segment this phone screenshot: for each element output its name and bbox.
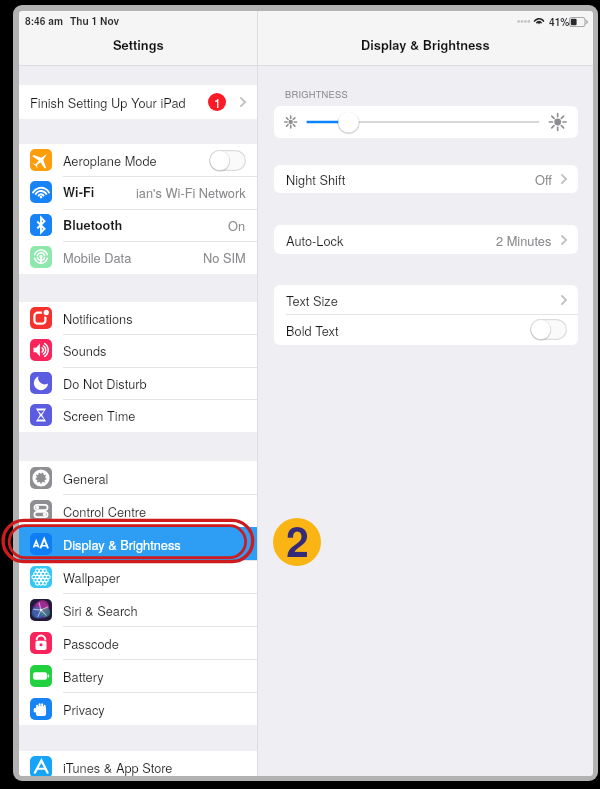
staticText: Auto-Lock [286,231,344,249]
staticText: 1 [214,94,221,111]
staticText: Settings [113,35,164,53]
staticText: Siri & Search [63,601,138,619]
staticText: Passcode [63,634,119,652]
staticText: Off [535,170,552,188]
staticText: Text Size [286,291,338,309]
button[interactable]: Display & Brightness [19,527,258,560]
button[interactable]: Brightness [274,106,578,138]
staticText: Wallpaper [63,568,121,586]
staticText: Wi-Fi [63,183,95,201]
other: Open [561,235,567,245]
button[interactable]: Night Shift [274,165,578,193]
button[interactable]: Toggle off [530,319,567,340]
staticText: BRIGHTNESS [285,87,348,100]
staticText: Bluetooth [63,216,123,234]
button[interactable]: Passcode [19,626,258,659]
button[interactable]: Control Centre [19,494,258,527]
button[interactable]: Bold Text [274,315,578,344]
staticText: 8:46 am [25,14,63,29]
button[interactable]: Notifications [19,302,258,334]
button[interactable]: Screen Time [19,399,258,431]
button[interactable]: Wallpaper [19,560,258,593]
staticText: 2 [286,518,309,559]
staticText: Do Not Disturb [63,374,147,392]
other: Open [561,174,567,184]
staticText: Display & Brightness [63,535,181,553]
button[interactable]: Siri & Search [19,593,258,626]
staticText: Battery [63,667,104,685]
staticText: Bold Text [286,321,339,339]
other: Wi-Fi [533,16,545,25]
staticText: Privacy [63,700,105,718]
staticText: Sounds [63,341,107,359]
button[interactable]: Toggle off [209,150,246,171]
staticText: General [63,469,109,487]
button[interactable]: Battery [19,659,258,692]
other: Open [240,97,246,107]
button[interactable]: Aeroplane Mode [19,144,258,176]
button[interactable]: General [19,461,258,494]
button[interactable]: Privacy [19,692,258,725]
button[interactable]: Auto-Lock [274,225,578,254]
button[interactable]: Mobile Data [19,241,258,273]
staticText: 2 Minutes [496,231,552,249]
staticText: Thu 1 Nov [70,14,120,29]
staticText: iTunes & App Store [63,758,173,776]
button[interactable]: Bluetooth [19,209,258,241]
staticText: Display & Brightness [361,36,490,54]
button[interactable]: Wi-Fi [19,176,258,208]
staticText: Mobile Data [63,248,132,266]
other: Battery [569,17,588,27]
button[interactable]: Step 2 [273,518,321,566]
button[interactable]: Sounds [19,334,258,366]
button[interactable]: Do Not Disturb [19,367,258,399]
staticText: Control Centre [63,502,147,520]
other: Open [561,295,567,305]
staticText: Night Shift [286,170,346,188]
button[interactable]: iTunes & App Store [19,751,258,776]
staticText: Finish Setting Up Your iPad [30,93,186,111]
staticText: On [228,216,246,234]
button[interactable]: Text Size [274,285,578,314]
staticText: Screen Time [63,406,136,424]
staticText: No SIM [203,248,246,266]
staticText: 41% [549,15,570,30]
staticText: Aeroplane Mode [63,151,157,169]
other: Step 2 highlight [0,0,600,789]
staticText: ian's Wi-Fi Network [136,183,246,201]
staticText: Notifications [63,309,133,327]
button[interactable]: Finish Setting Up Your iPad [19,85,258,119]
